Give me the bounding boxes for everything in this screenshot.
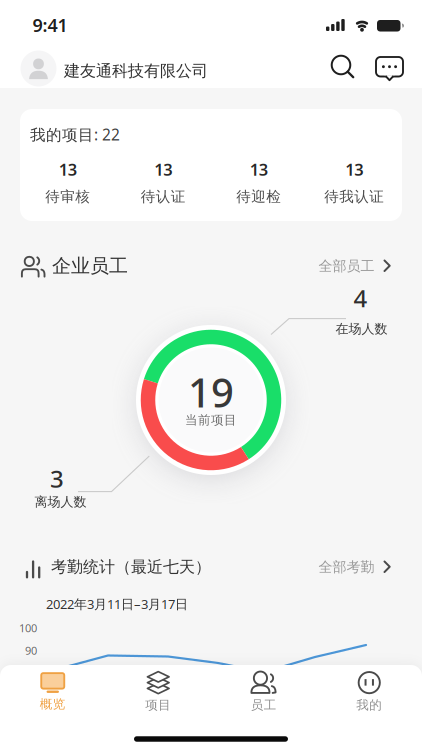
staticText: 2022年3月11日–3月17日 [46, 595, 188, 613]
staticText: 企业员工 [52, 254, 128, 278]
button[interactable]: 建友通科技有限公司 [64, 61, 208, 81]
staticText: 我的 [356, 697, 382, 713]
button[interactable]: 搜索 [322, 48, 366, 92]
staticText: 全部考勤 [318, 558, 374, 576]
staticText: 考勤统计（最近七天） [51, 557, 211, 577]
staticText: 概览 [40, 696, 66, 712]
staticText: 建友通科技有限公司 [64, 61, 208, 81]
button[interactable]: 员工 [219, 669, 309, 715]
staticText: 13 [59, 158, 77, 180]
button[interactable]: 全部考勤 [318, 552, 391, 582]
staticText: 4 [353, 282, 367, 314]
staticText: 我的项目: 22 [30, 124, 120, 145]
button[interactable]: 我的 [324, 669, 414, 715]
staticText: 13 [345, 158, 363, 180]
staticText: 13 [250, 158, 268, 180]
button[interactable]: 我的项目: 22 [20, 109, 402, 221]
staticText: 9:41 [32, 13, 67, 37]
staticText: 90 [25, 643, 37, 658]
staticText: 全部员工 [318, 257, 374, 275]
staticText: 在场人数 [335, 321, 387, 337]
staticText: 待迎检 [236, 187, 281, 206]
staticText: 离场人数 [34, 494, 86, 510]
button[interactable]: 概览 [8, 669, 98, 715]
staticText: 19 [188, 365, 234, 419]
button[interactable]: 项目 [113, 669, 203, 715]
staticText: 员工 [251, 697, 277, 713]
button[interactable]: 消息 [369, 47, 410, 91]
staticText: 100 [19, 620, 37, 635]
button[interactable]: 账户 [20, 50, 56, 86]
staticText: 当前项目 [185, 412, 237, 428]
staticText: 3 [50, 462, 64, 495]
staticText: 13 [154, 158, 172, 180]
button[interactable]: 全部员工 [318, 251, 391, 281]
staticText: 待审核 [45, 187, 90, 206]
staticText: 项目 [145, 697, 171, 713]
staticText: 待我认证 [324, 187, 384, 206]
staticText: 待认证 [141, 187, 186, 206]
